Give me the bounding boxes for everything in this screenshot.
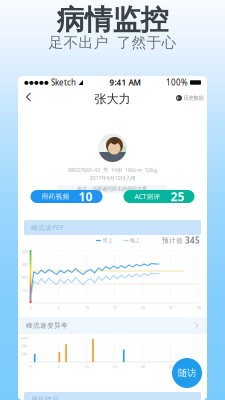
staticText: 足不出户 了然于心 (48, 33, 176, 51)
staticText: Sketch (51, 77, 76, 88)
staticText: 20 (140, 364, 144, 369)
staticText: 用药视频 (41, 192, 69, 201)
button[interactable]: 峰流速PEF (24, 220, 201, 235)
staticText: 15 (112, 364, 116, 369)
staticText: 5 (57, 305, 59, 310)
staticText: 2017年4月10日入组 (89, 174, 135, 182)
button[interactable]: 历史数据 (174, 91, 205, 105)
button[interactable]: 峰流速变异率 (18, 317, 207, 334)
staticText: 10 (84, 364, 88, 369)
staticText: 20 (140, 305, 144, 310)
button[interactable]: 用药情况 (24, 392, 201, 400)
staticText: 15 (112, 305, 116, 310)
staticText: 450 (21, 262, 27, 267)
staticText: 峰流速变异率 (26, 321, 68, 330)
staticText: 10 (78, 188, 92, 204)
staticText: 0 (29, 305, 31, 310)
staticText: 用药情况 (31, 395, 59, 400)
button[interactable]: 用药视频 (30, 190, 102, 203)
staticText: 20% (20, 351, 27, 357)
staticText: 早上 (102, 237, 112, 244)
staticText: 30% (20, 343, 27, 349)
staticText: ●●●●● (24, 79, 49, 86)
staticText: 9:41 AM (109, 77, 140, 88)
staticText: 病情监控 (56, 3, 168, 37)
staticText: 10 (84, 305, 88, 310)
staticText: 张大力 (94, 92, 130, 106)
staticText: 晚上 (130, 237, 140, 244)
staticText: 88027665-43 男 14岁 160cm 52kg (68, 166, 157, 174)
staticText: 30 (196, 364, 200, 369)
staticText: 峰流速PEF (31, 223, 63, 232)
staticText: 100% (166, 77, 188, 88)
staticText: 345 (185, 235, 200, 246)
staticText: 25 (170, 188, 184, 204)
staticText: 600 (21, 249, 27, 254)
staticText: 随访 (178, 367, 196, 379)
staticText: 300 (21, 275, 27, 280)
staticText: 预计值 (162, 236, 183, 245)
staticText: 25 (168, 364, 172, 369)
button[interactable]: ACT测评 (123, 190, 194, 203)
staticText: 25 (168, 305, 172, 310)
button[interactable]: Back (21, 88, 43, 110)
staticText: ACT测评 (134, 192, 160, 201)
staticText: 5 (57, 364, 59, 369)
staticText: 备注：须要遵照医生的用药方案 (77, 186, 147, 192)
staticText: 30 (196, 305, 200, 310)
button[interactable]: 随访 (172, 358, 202, 388)
staticText: 150 (21, 288, 27, 293)
staticText: 40% (20, 335, 27, 341)
staticText: 历史数据 (183, 95, 203, 101)
staticText: 0 (29, 364, 31, 369)
